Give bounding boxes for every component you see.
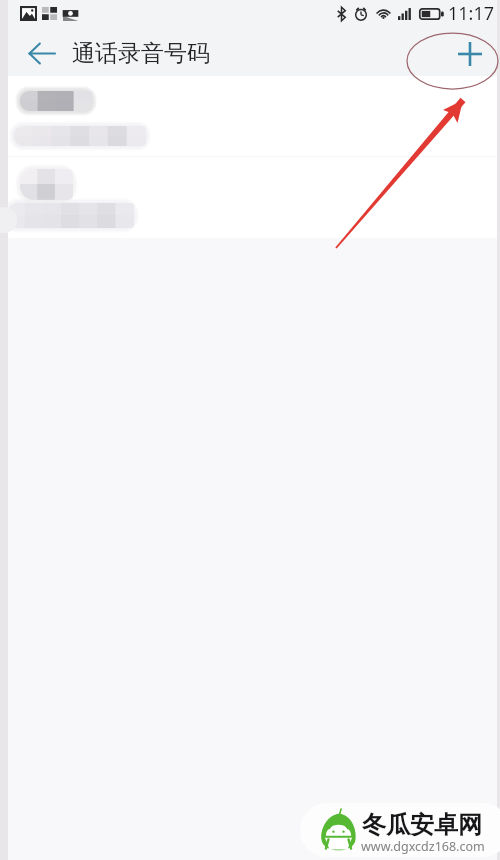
button[interactable] xyxy=(8,157,497,238)
button[interactable] xyxy=(8,76,497,156)
staticText: 通话录音号码 xyxy=(72,39,210,68)
staticText: www.dgxcdz168.com xyxy=(361,838,485,855)
staticText: 冬瓜安卓网 xyxy=(362,810,482,840)
button[interactable]: Add xyxy=(448,32,492,76)
button[interactable]: Back xyxy=(19,31,63,75)
staticText: 11:17 xyxy=(448,1,495,26)
